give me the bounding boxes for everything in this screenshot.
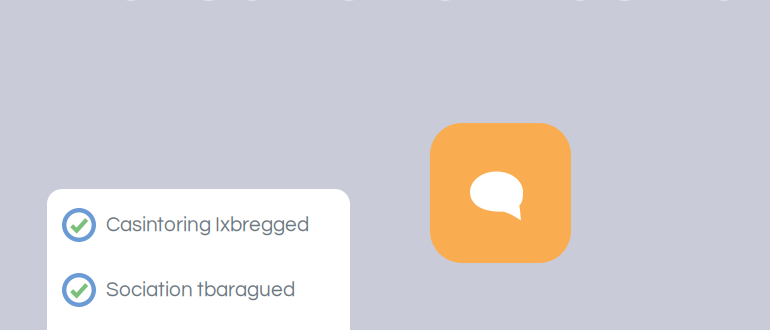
button[interactable]: Casintoring Ixbregged — [62, 199, 350, 251]
staticText: Sociation tbaragued — [106, 279, 295, 301]
button[interactable]: Messages — [430, 123, 571, 263]
button[interactable]: Sociation tbaragued — [62, 264, 350, 316]
staticText: Casintoring Ixbregged — [106, 214, 309, 236]
